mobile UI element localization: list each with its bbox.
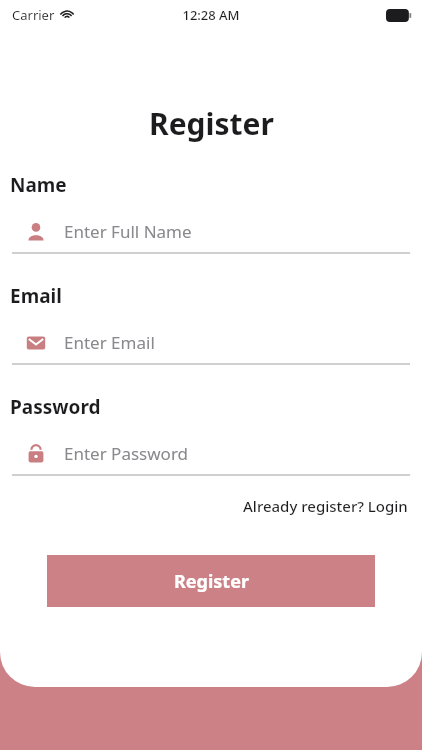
button[interactable]: Already register? Login (241, 492, 410, 520)
staticText: Register (149, 103, 274, 144)
staticText: Enter Email (64, 331, 155, 354)
other: Name (26, 222, 46, 242)
staticText: Already register? Login (243, 496, 408, 516)
other: Email (26, 333, 46, 353)
button[interactable]: Name (12, 220, 410, 243)
staticText: Carrier (12, 6, 55, 24)
button[interactable]: Email (12, 331, 410, 354)
staticText: Enter Password (64, 442, 189, 465)
staticText: Enter Full Name (64, 220, 192, 243)
staticText: Password (10, 394, 101, 420)
staticText: Register (174, 569, 249, 594)
button[interactable]: Register (47, 555, 375, 607)
other: Password (26, 444, 46, 464)
staticText: Email (10, 283, 62, 309)
button[interactable]: Password (12, 442, 410, 465)
staticText: 12:28 AM (182, 6, 240, 24)
staticText: Name (10, 172, 67, 198)
